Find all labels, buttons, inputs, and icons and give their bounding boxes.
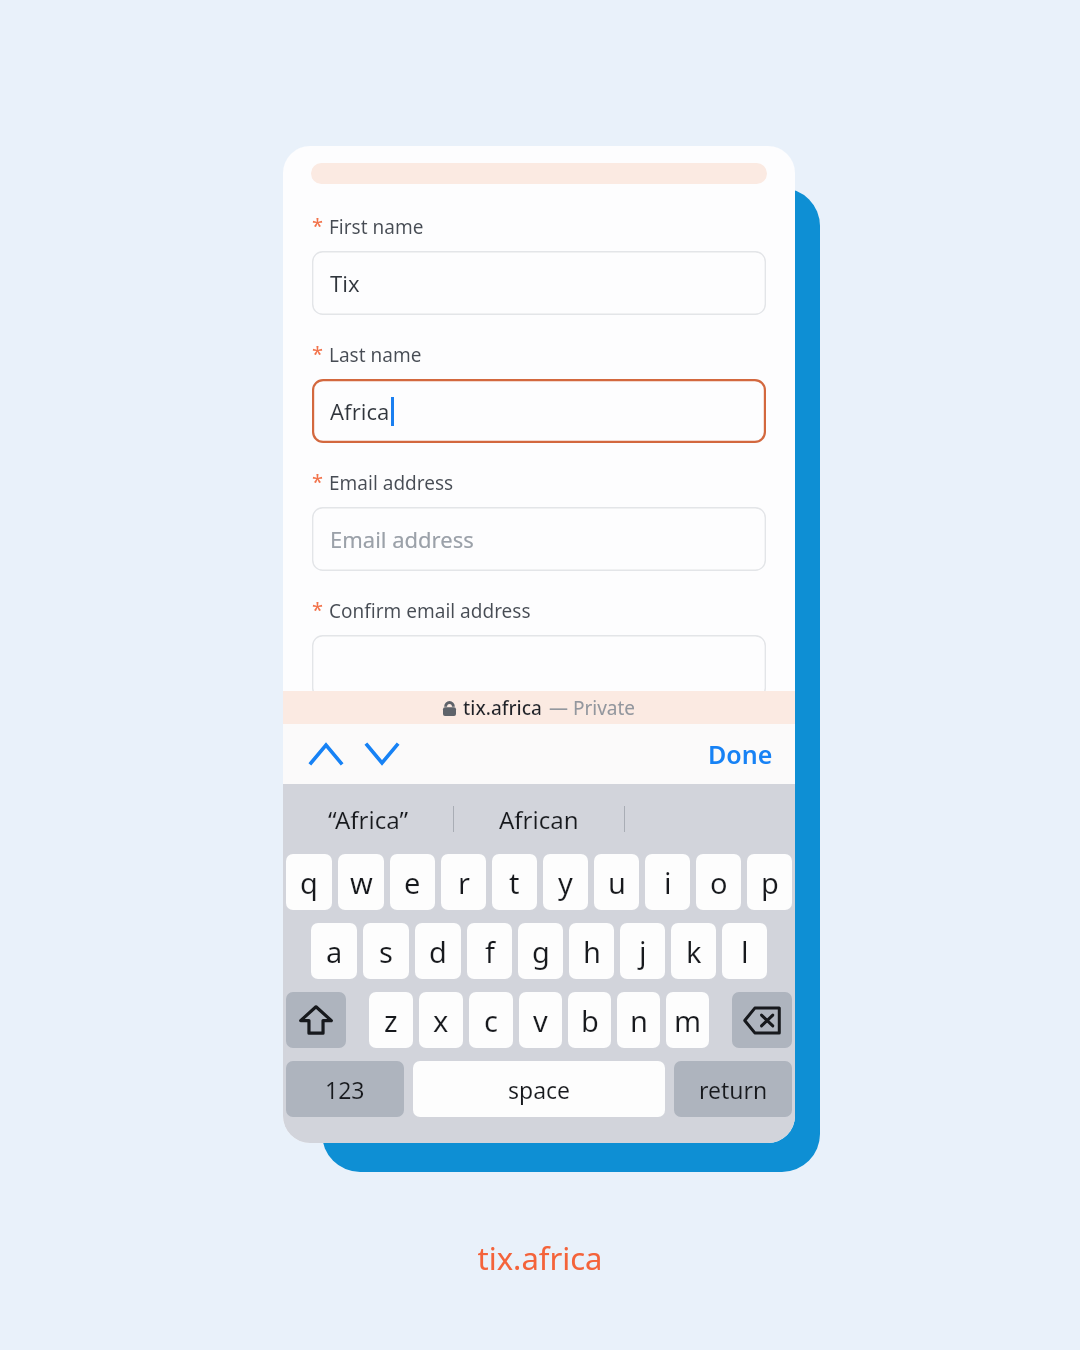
staticText: Email address [329, 470, 454, 496]
button[interactable]: b [568, 992, 611, 1048]
staticText: w [350, 863, 373, 902]
button[interactable]: c [469, 992, 513, 1048]
staticText: z [384, 1001, 398, 1040]
button[interactable]: return [674, 1061, 792, 1117]
button[interactable]: k [671, 923, 716, 979]
button[interactable]: z [369, 992, 413, 1048]
staticText: d [429, 932, 447, 971]
staticText: t [509, 863, 520, 902]
staticText: n [630, 1001, 648, 1040]
staticText: f [485, 932, 495, 971]
staticText: g [532, 932, 550, 971]
button[interactable]: h [569, 923, 614, 979]
staticText: k [686, 932, 702, 971]
staticText: q [300, 863, 318, 902]
staticText: African [499, 803, 579, 836]
staticText: y [558, 863, 573, 902]
button[interactable]: Email address [312, 507, 766, 571]
button[interactable]: Africa [312, 379, 766, 443]
staticText: 123 [325, 1074, 365, 1105]
button[interactable]: r [441, 854, 486, 910]
button[interactable]: d [415, 923, 461, 979]
button[interactable]: w [338, 854, 384, 910]
button[interactable]: e [390, 854, 435, 910]
staticText: l [741, 932, 749, 971]
button[interactable]: Backspace [732, 992, 792, 1048]
staticText: * [312, 212, 324, 239]
staticText: space [508, 1074, 571, 1105]
button[interactable]: i [645, 854, 690, 910]
button[interactable]: a [311, 923, 357, 979]
button[interactable] [312, 635, 766, 699]
staticText: p [761, 863, 779, 902]
staticText: — Private [549, 695, 636, 721]
staticText: v [533, 1001, 548, 1040]
staticText: j [639, 932, 647, 971]
staticText: c [484, 1001, 498, 1040]
staticText: return [699, 1074, 768, 1105]
staticText: Done [708, 737, 773, 771]
button[interactable]: g [518, 923, 563, 979]
staticText: First name [329, 214, 424, 240]
staticText: s [379, 932, 393, 971]
button[interactable]: l [722, 923, 767, 979]
staticText: “Africa” [328, 803, 408, 836]
staticText: o [710, 863, 728, 902]
button[interactable]: space [413, 1061, 665, 1117]
button[interactable]: 123 [286, 1061, 404, 1117]
staticText: Africa [330, 396, 390, 426]
button[interactable]: u [594, 854, 639, 910]
button[interactable]: y [543, 854, 588, 910]
button[interactable]: Next field [361, 733, 403, 775]
staticText: Email address [330, 524, 474, 554]
staticText: u [608, 863, 626, 902]
staticText: r [458, 863, 470, 902]
staticText: e [404, 863, 421, 902]
button[interactable]: v [519, 992, 562, 1048]
button[interactable]: Shift [286, 992, 346, 1048]
button[interactable]: x [419, 992, 463, 1048]
button[interactable]: Previous field [305, 733, 347, 775]
staticText: Last name [329, 342, 422, 368]
staticText: tix.africa [477, 1237, 603, 1279]
staticText: x [433, 1001, 449, 1040]
staticText: m [674, 1001, 702, 1040]
staticText: * [312, 340, 324, 367]
button[interactable]: Tix [312, 251, 766, 315]
staticText: * [312, 596, 324, 623]
button[interactable]: p [747, 854, 792, 910]
staticText: * [312, 468, 324, 495]
button[interactable]: n [617, 992, 660, 1048]
button[interactable]: q [286, 854, 332, 910]
button[interactable]: Done [702, 733, 779, 775]
button[interactable]: “Africa” [283, 784, 453, 854]
button[interactable]: African [454, 784, 624, 854]
button[interactable]: s [363, 923, 409, 979]
staticText: h [583, 932, 601, 971]
button[interactable]: f [467, 923, 512, 979]
staticText: Tix [330, 268, 360, 298]
staticText: Confirm email address [329, 598, 531, 624]
staticText: a [326, 932, 343, 971]
button[interactable]: m [666, 992, 709, 1048]
staticText: b [581, 1001, 599, 1040]
button[interactable]: j [620, 923, 665, 979]
staticText: tix.africa [463, 695, 542, 721]
staticText: i [664, 863, 672, 902]
button[interactable]: o [696, 854, 741, 910]
button[interactable]: t [492, 854, 537, 910]
